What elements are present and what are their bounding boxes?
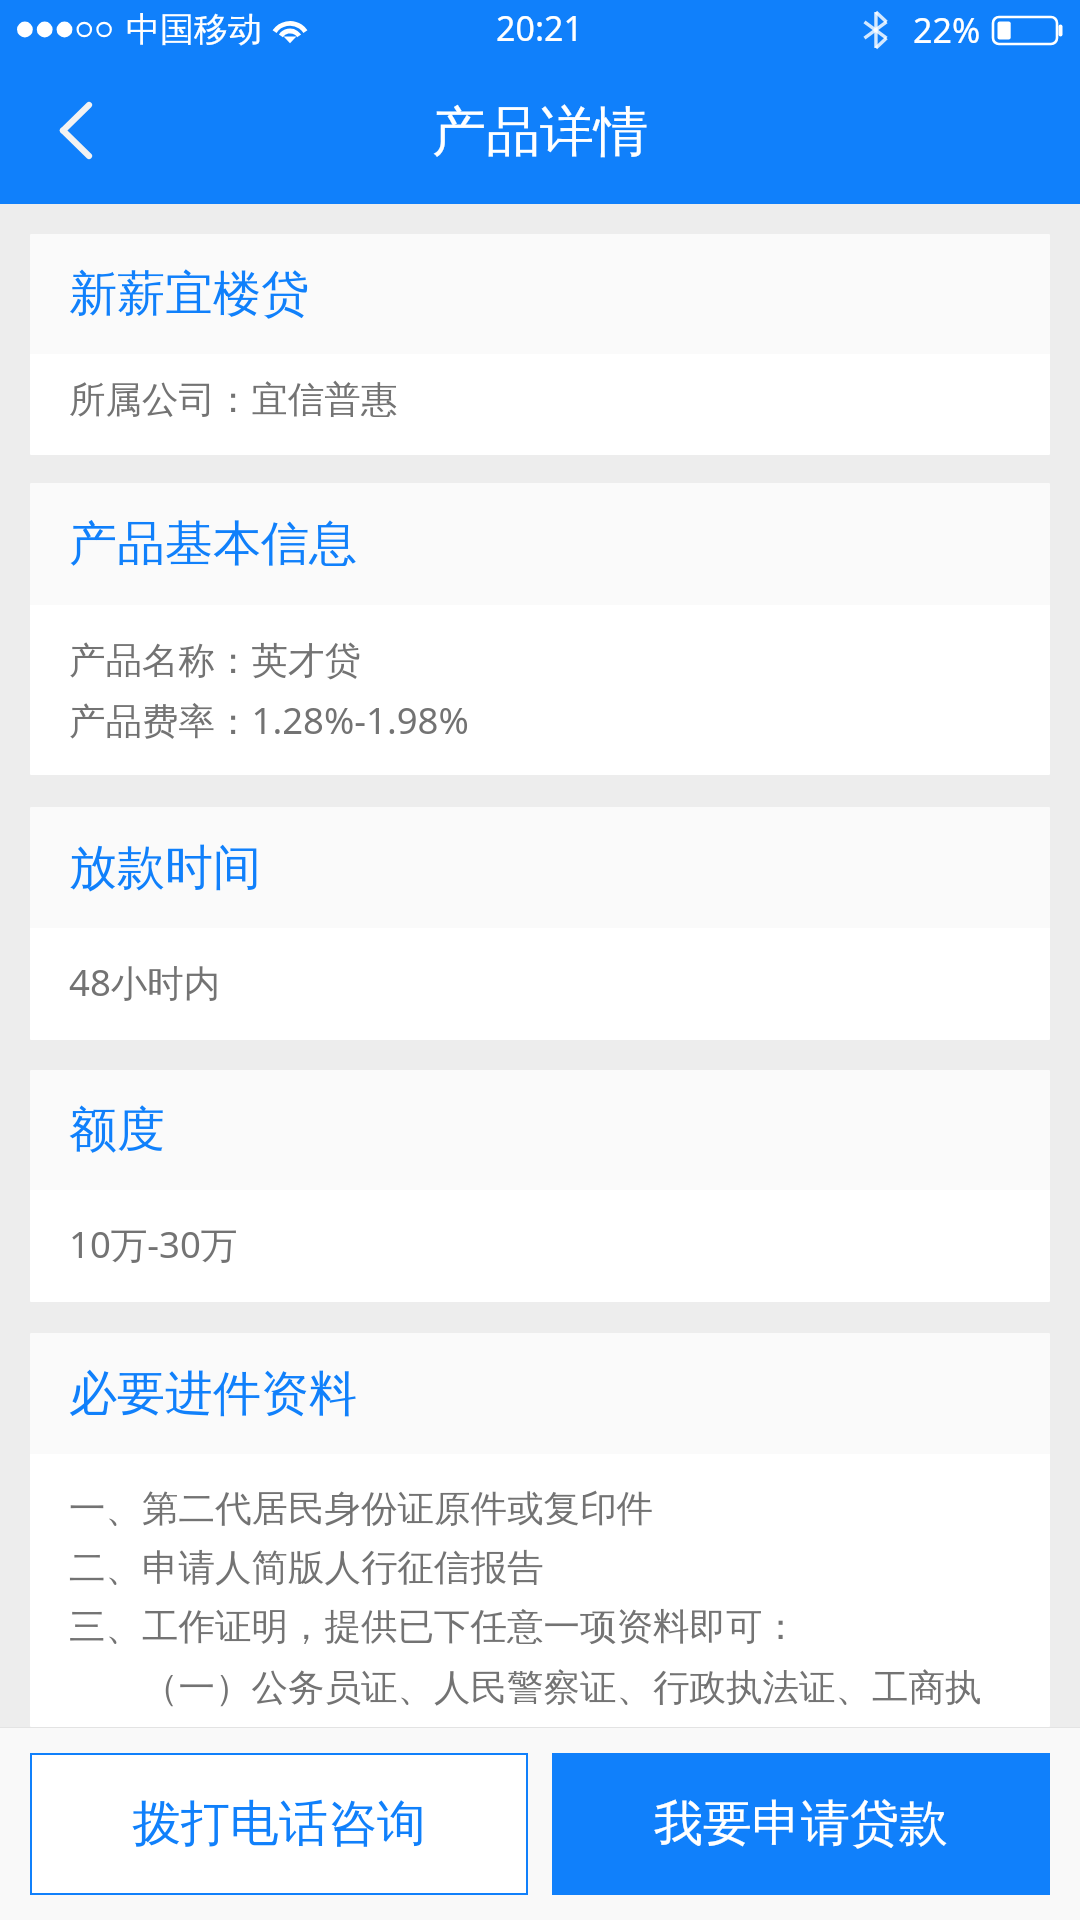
button[interactable]: 我要申请贷款	[552, 1753, 1050, 1895]
staticText: （一）公务员证、人民警察证、行政执法证、工商执	[69, 1661, 982, 1711]
staticText: 中国移动	[126, 8, 262, 51]
staticText: 我要申请贷款	[654, 1793, 948, 1855]
staticText: 新薪宜楼贷	[69, 264, 309, 324]
staticText: 48小时内	[69, 957, 221, 1007]
staticText: 产品基本信息	[69, 514, 357, 574]
staticText: 放款时间	[69, 838, 261, 898]
staticText: 产品费率：1.28%-1.98%	[69, 695, 469, 745]
button[interactable]: 必要进件资料	[30, 1333, 1050, 1727]
staticText: 额度	[69, 1100, 165, 1160]
button[interactable]: 新薪宜楼贷	[30, 234, 1050, 455]
staticText: 二、申请人简版人行征信报告	[69, 1545, 544, 1591]
staticText: 必要进件资料	[69, 1364, 357, 1424]
button[interactable]: Back	[16, 60, 136, 204]
staticText: 10万-30万	[69, 1219, 238, 1269]
staticText: 产品详情	[432, 98, 648, 166]
staticText: 20:21	[496, 5, 583, 51]
staticText: 产品名称：英才贷	[69, 638, 361, 684]
button[interactable]: 额度	[30, 1070, 1050, 1302]
button[interactable]: 产品基本信息	[30, 483, 1050, 775]
button[interactable]: 放款时间	[30, 807, 1050, 1040]
button[interactable]: 拨打电话咨询	[30, 1753, 528, 1895]
staticText: 三、工作证明，提供已下任意一项资料即可：	[69, 1604, 799, 1650]
staticText: 一、第二代居民身份证原件或复印件	[69, 1486, 653, 1532]
staticText: 22%	[913, 7, 981, 53]
staticText: 所属公司：宜信普惠	[69, 377, 398, 423]
staticText: 拨打电话咨询	[132, 1793, 426, 1855]
